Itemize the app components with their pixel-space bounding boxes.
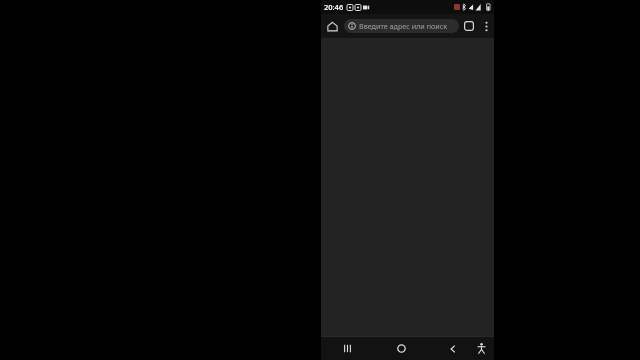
button[interactable]: Home [381,337,421,360]
staticText: 20:46 [324,2,344,12]
button[interactable]: Recent apps [327,337,367,360]
staticText: Введите адрес или поиск [359,21,448,31]
button[interactable]: Введите адрес или поиск [344,19,459,33]
button[interactable]: More options [479,14,494,38]
button[interactable]: Home [321,14,344,38]
button[interactable]: Back [436,337,470,360]
button[interactable]: Tabs [459,14,479,38]
button[interactable]: Accessibility [470,337,492,360]
